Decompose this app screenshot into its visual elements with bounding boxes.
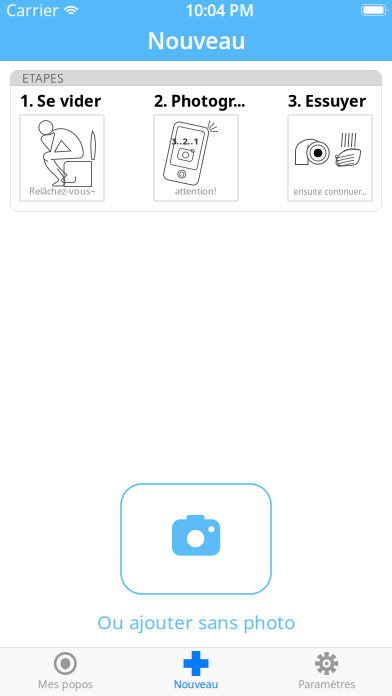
button[interactable]: Ou ajouter sans photo: [97, 594, 295, 632]
staticText: 3..2..1: [171, 135, 198, 147]
staticText: Nouveau: [173, 677, 218, 691]
staticText: Paramètres: [298, 677, 355, 691]
staticText: 1. Se vider: [20, 90, 101, 111]
button[interactable]: Mes popos: [0, 648, 131, 695]
staticText: attention!: [175, 185, 217, 197]
staticText: Ou ajouter sans photo: [97, 610, 295, 634]
button[interactable]: Nouveau: [131, 648, 261, 695]
staticText: Relâchez-vous~: [29, 185, 95, 197]
staticText: Nouveau: [147, 25, 245, 55]
button[interactable]: Prendre une photo: [121, 484, 271, 594]
staticText: 2. Photogr...: [154, 90, 245, 111]
staticText: 3. Essuyer: [288, 90, 366, 111]
staticText: ETAPES: [22, 70, 64, 86]
staticText: ensuite continuer...: [293, 186, 366, 197]
staticText: 10:04 PM: [185, 0, 254, 21]
staticText: Mes popos: [38, 677, 93, 691]
button[interactable]: Paramètres: [261, 648, 392, 695]
staticText: Carrier: [6, 0, 59, 21]
